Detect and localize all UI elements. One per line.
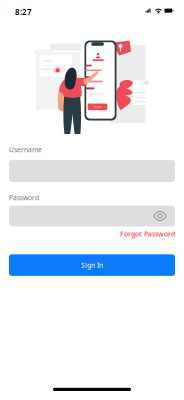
button[interactable]: Sign In	[9, 254, 175, 276]
button[interactable]: Forgot Password	[120, 229, 175, 238]
staticText: Forgot Password	[120, 229, 175, 238]
staticText: Password	[9, 193, 39, 202]
staticText: 8:27	[15, 6, 32, 17]
staticText: Sign In	[81, 261, 103, 270]
button[interactable]: Show password	[153, 206, 175, 226]
staticText: Username	[9, 145, 42, 154]
